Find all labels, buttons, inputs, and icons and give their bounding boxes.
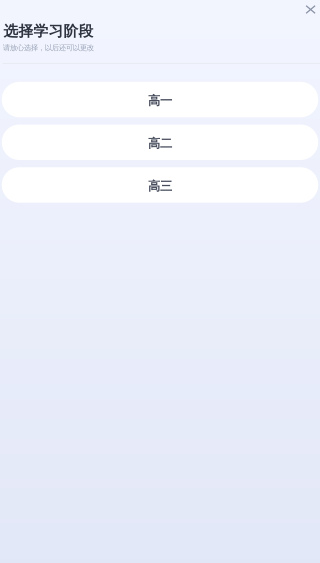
button[interactable]: 高三 — [2, 167, 318, 203]
button[interactable]: Close — [305, 0, 320, 14]
staticText: 高一 — [148, 93, 172, 109]
staticText: 高三 — [148, 178, 172, 194]
staticText: 选择学习阶段 — [3, 22, 93, 40]
button[interactable]: 高二 — [2, 125, 318, 160]
staticText: 高二 — [148, 136, 172, 151]
button[interactable]: 高一 — [2, 82, 318, 117]
staticText: 请放心选择，以后还可以更改 — [3, 43, 94, 52]
